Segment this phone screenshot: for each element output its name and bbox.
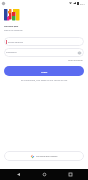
staticText: By continuing, you agree to our Terms of… (21, 79, 68, 82)
staticText: 9:41 (80, 2, 85, 5)
button[interactable]: Continue with Google (4, 151, 84, 161)
staticText: Email address (8, 41, 24, 44)
staticText: Forgot password? (68, 59, 83, 61)
staticText: Login (41, 70, 48, 73)
button[interactable]: Email address (4, 37, 84, 46)
staticText: Continue with Google (36, 155, 58, 158)
button[interactable]: Password (4, 48, 84, 57)
button[interactable]: Login (4, 66, 84, 76)
staticText: Password (6, 51, 17, 54)
button[interactable]: Back (12, 169, 24, 180)
staticText: Sign in to continue (4, 29, 23, 32)
button[interactable]: By continuing, you agree to our Terms of… (21, 79, 68, 82)
button[interactable]: Recent apps (64, 169, 76, 180)
staticText: Welcome back (4, 25, 19, 28)
button[interactable]: Forgot password? (67, 58, 84, 62)
button[interactable]: Home (38, 169, 50, 180)
